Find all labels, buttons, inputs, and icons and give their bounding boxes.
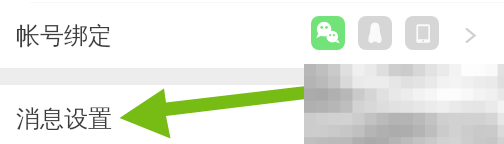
button[interactable]: 帐号绑定 bbox=[0, 2, 504, 68]
other: More bbox=[463, 27, 480, 44]
button[interactable]: WeChat bbox=[311, 16, 345, 50]
button[interactable]: Phone bbox=[405, 16, 439, 50]
staticText: 消息设置 bbox=[16, 104, 112, 134]
button[interactable]: QQ bbox=[358, 16, 392, 50]
button[interactable]: 消息设置 bbox=[0, 85, 504, 144]
staticText: 帐号绑定 bbox=[16, 21, 112, 51]
